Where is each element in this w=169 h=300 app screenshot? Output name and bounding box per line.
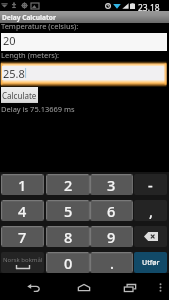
- button[interactable]: Back: [18, 280, 48, 295]
- staticText: 2: [64, 175, 73, 195]
- staticText: 23.18: [138, 2, 160, 13]
- button[interactable]: Utfør: [134, 252, 167, 273]
- button[interactable]: Home: [69, 280, 99, 295]
- staticText: Calculate: [2, 90, 37, 101]
- staticText: Delay Calculator: [2, 13, 56, 22]
- staticText: 5: [64, 201, 73, 221]
- staticText: 1: [18, 175, 27, 195]
- button[interactable]: Calculate: [1, 87, 38, 103]
- staticText: Delay is 75.13669 ms: [1, 104, 75, 114]
- staticText: 8: [64, 227, 73, 247]
- button[interactable]: 25.8: [0, 61, 169, 87]
- button[interactable]: 2: [46, 174, 90, 195]
- button[interactable]: Recent apps: [115, 280, 145, 295]
- button[interactable]: Delete: [134, 226, 167, 247]
- staticText: ,: [149, 201, 153, 221]
- staticText: Norsk bokmål: [3, 256, 43, 264]
- button[interactable]: More options: [153, 280, 167, 295]
- button[interactable]: 9: [90, 226, 133, 247]
- staticText: .: [110, 253, 114, 273]
- staticText: 25.8: [3, 66, 25, 79]
- button[interactable]: .: [90, 252, 133, 273]
- button[interactable]: 7: [1, 226, 44, 247]
- button[interactable]: ,: [134, 200, 167, 221]
- staticText: Length (meters):: [1, 50, 60, 60]
- button[interactable]: 1: [1, 174, 44, 195]
- button[interactable]: 6: [90, 200, 133, 221]
- other: Norsk bokmål: [3, 256, 43, 269]
- button[interactable]: 20: [1, 33, 167, 51]
- staticText: -: [148, 175, 153, 195]
- button[interactable]: 5: [46, 200, 90, 221]
- staticText: 4: [18, 201, 27, 221]
- button[interactable]: 0: [46, 252, 90, 273]
- staticText: 7: [18, 227, 27, 247]
- staticText: Utfør: [142, 258, 160, 268]
- button[interactable]: -: [134, 174, 167, 195]
- staticText: Temperature (celsius):: [1, 21, 79, 31]
- button[interactable]: 8: [46, 226, 90, 247]
- button[interactable]: Norsk bokmål: [1, 252, 44, 273]
- staticText: 20: [3, 33, 16, 48]
- staticText: 3: [107, 175, 116, 195]
- staticText: 6: [107, 201, 116, 221]
- staticText: 0: [64, 253, 73, 273]
- other: Delete: [144, 232, 158, 241]
- button[interactable]: 4: [1, 200, 44, 221]
- staticText: 9: [107, 227, 116, 247]
- button[interactable]: 3: [90, 174, 133, 195]
